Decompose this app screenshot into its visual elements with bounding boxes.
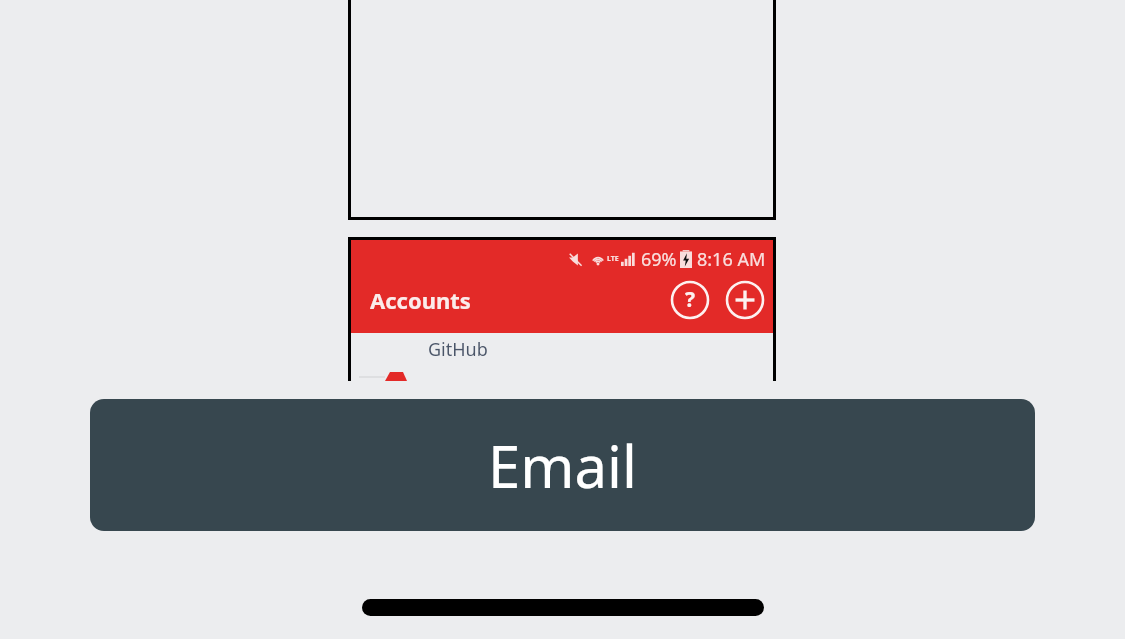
button[interactable]: Accounts screen screenshot <box>348 237 776 381</box>
button[interactable]: Email <box>90 399 1035 531</box>
staticText: Accounts <box>370 285 471 315</box>
staticText: ? <box>685 285 696 314</box>
button[interactable]: Add account <box>723 278 767 322</box>
staticText: 69% <box>641 247 677 272</box>
staticText: GitHub <box>428 337 488 362</box>
staticText: LTE <box>607 254 619 264</box>
staticText: 8:16 AM <box>697 247 766 272</box>
button[interactable]: Help <box>668 278 712 322</box>
staticText: Email <box>488 426 637 505</box>
